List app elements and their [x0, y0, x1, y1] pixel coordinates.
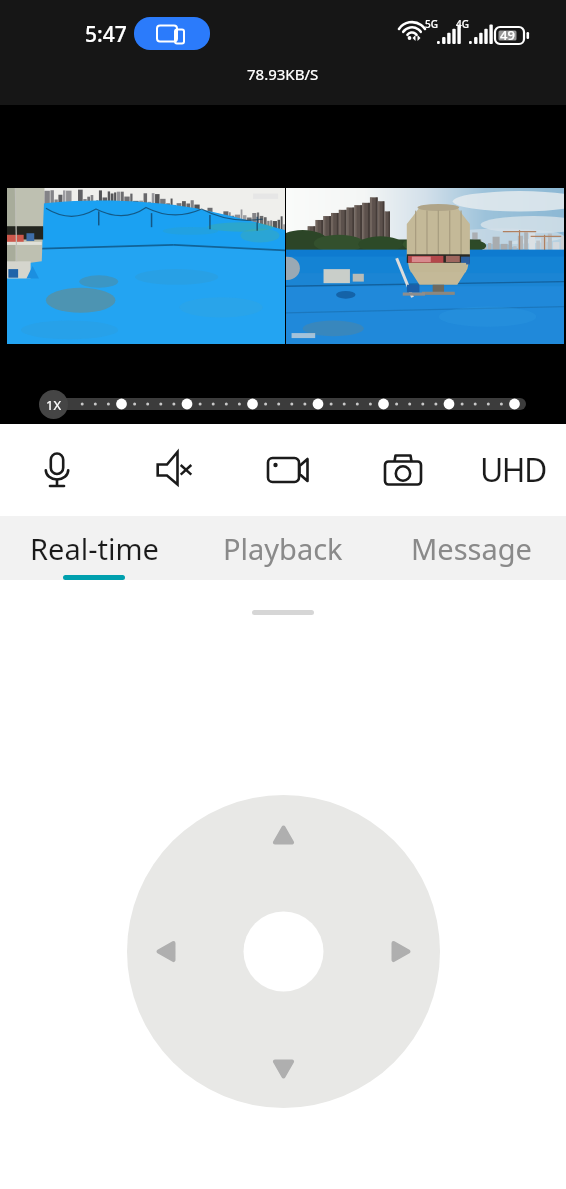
button[interactable]: 1X: [39, 390, 68, 419]
staticText: 78.93KB/S: [247, 64, 319, 84]
staticText: Real-time: [30, 529, 159, 568]
button[interactable]: Pan tilt control: [127, 795, 440, 1108]
staticText: Message: [411, 529, 532, 568]
button[interactable]: UHD: [458, 424, 566, 516]
button[interactable]: Camera 2: [286, 188, 564, 344]
staticText: UHD: [480, 448, 546, 492]
staticText: 5:47: [85, 20, 127, 49]
staticText: 49: [500, 26, 515, 44]
staticText: 4G: [456, 17, 469, 31]
button[interactable]: Cast: [134, 17, 210, 50]
button[interactable]: Real-time: [0, 516, 188, 580]
button[interactable]: Record video: [242, 424, 334, 516]
staticText: 1X: [46, 396, 62, 414]
button[interactable]: Microphone: [11, 424, 103, 516]
button[interactable]: Camera 1: [7, 188, 285, 344]
button[interactable]: Playback: [188, 516, 377, 580]
button[interactable]: Mute: [126, 424, 218, 516]
button[interactable]: Snapshot: [357, 424, 449, 516]
staticText: 5G: [425, 17, 438, 31]
button[interactable]: Message: [377, 516, 566, 580]
staticText: Playback: [223, 529, 343, 568]
